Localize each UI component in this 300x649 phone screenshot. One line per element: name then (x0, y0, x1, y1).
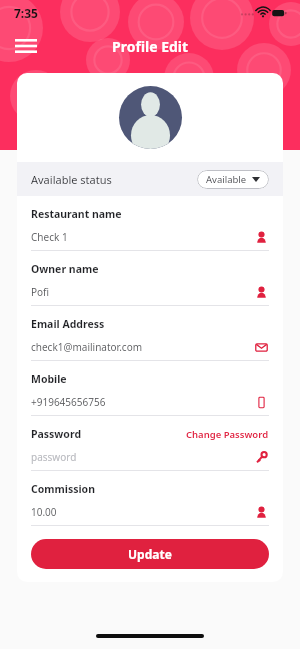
button[interactable]: Change Password (186, 428, 269, 441)
other: Password (253, 449, 269, 465)
staticText: Profile Edit (112, 37, 189, 56)
button[interactable]: Open navigation menu (10, 30, 42, 62)
staticText: Available status (31, 172, 112, 187)
button[interactable]: Email Address (31, 306, 269, 361)
button[interactable]: Update (31, 539, 269, 569)
other: Mobile (253, 394, 269, 410)
staticText: 10.00 (31, 505, 57, 519)
button[interactable]: Password (31, 416, 269, 471)
staticText: Mobile (31, 372, 67, 386)
staticText: Restaurant name (31, 207, 122, 221)
staticText: 7:35 (14, 5, 38, 21)
button[interactable]: Restaurant name (31, 196, 269, 251)
staticText: Commission (31, 482, 95, 496)
staticText: check1@mailinator.com (31, 340, 143, 354)
button[interactable]: Owner name (31, 251, 269, 306)
other: Commission (253, 504, 269, 520)
staticText: Email Address (31, 317, 105, 331)
staticText: Available (206, 173, 247, 186)
staticText: Pofi (31, 285, 50, 299)
other: Restaurant name (253, 229, 269, 245)
other: Owner name (253, 284, 269, 300)
button[interactable]: Commission (31, 471, 269, 526)
staticText: Update (128, 546, 172, 562)
staticText: Check 1 (31, 230, 68, 244)
staticText: +919645656756 (31, 395, 106, 409)
staticText: password (31, 450, 77, 464)
staticText: Owner name (31, 262, 99, 276)
button[interactable]: Available (197, 170, 269, 189)
staticText: Password (31, 427, 82, 441)
button[interactable]: Mobile (31, 361, 269, 416)
other: Email Address (253, 339, 269, 355)
